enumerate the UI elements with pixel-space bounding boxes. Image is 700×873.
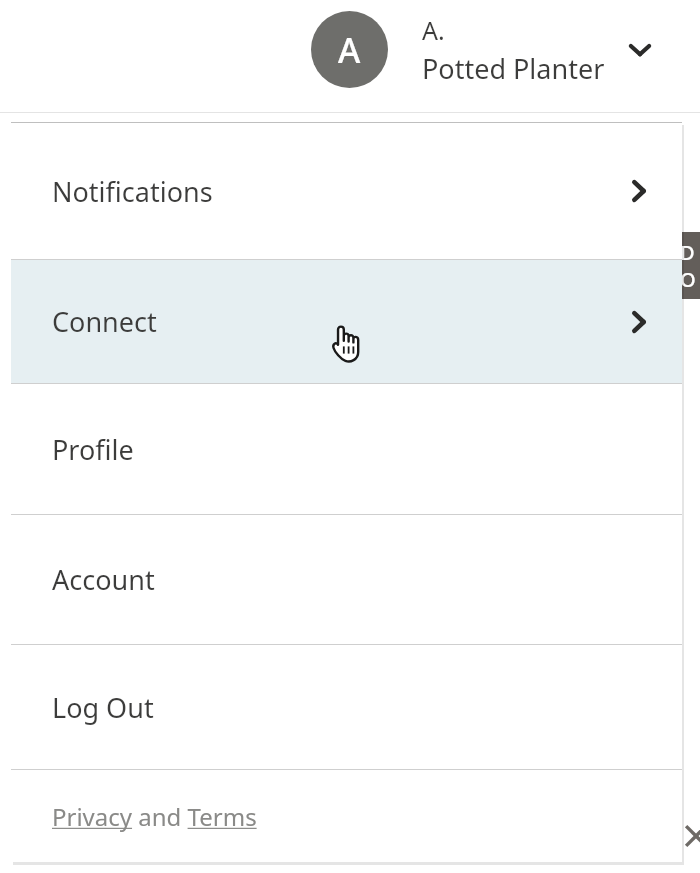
button[interactable]: Notifications xyxy=(11,123,682,259)
staticText: Log Out xyxy=(52,689,154,726)
staticText: A. xyxy=(422,13,445,47)
button[interactable]: Account xyxy=(11,515,682,644)
button[interactable]: Connect xyxy=(11,260,682,383)
other: Expand account menu xyxy=(625,35,655,65)
button[interactable]: Log Out xyxy=(11,645,682,769)
staticText: Connect xyxy=(52,303,157,340)
staticText: Potted Planter xyxy=(422,50,605,87)
staticText: A xyxy=(338,27,361,73)
button[interactable]: Docs tab xyxy=(678,232,700,299)
button[interactable]: Profile xyxy=(11,384,682,514)
button[interactable]: Privacy and Terms xyxy=(52,794,257,839)
button[interactable]: A xyxy=(305,7,661,92)
staticText: Profile xyxy=(52,431,134,468)
button[interactable]: Close xyxy=(676,816,700,856)
staticText: Notifications xyxy=(52,173,213,210)
staticText: Privacy and Terms xyxy=(52,800,257,833)
staticText: DO xyxy=(680,239,700,293)
staticText: Account xyxy=(52,561,155,598)
